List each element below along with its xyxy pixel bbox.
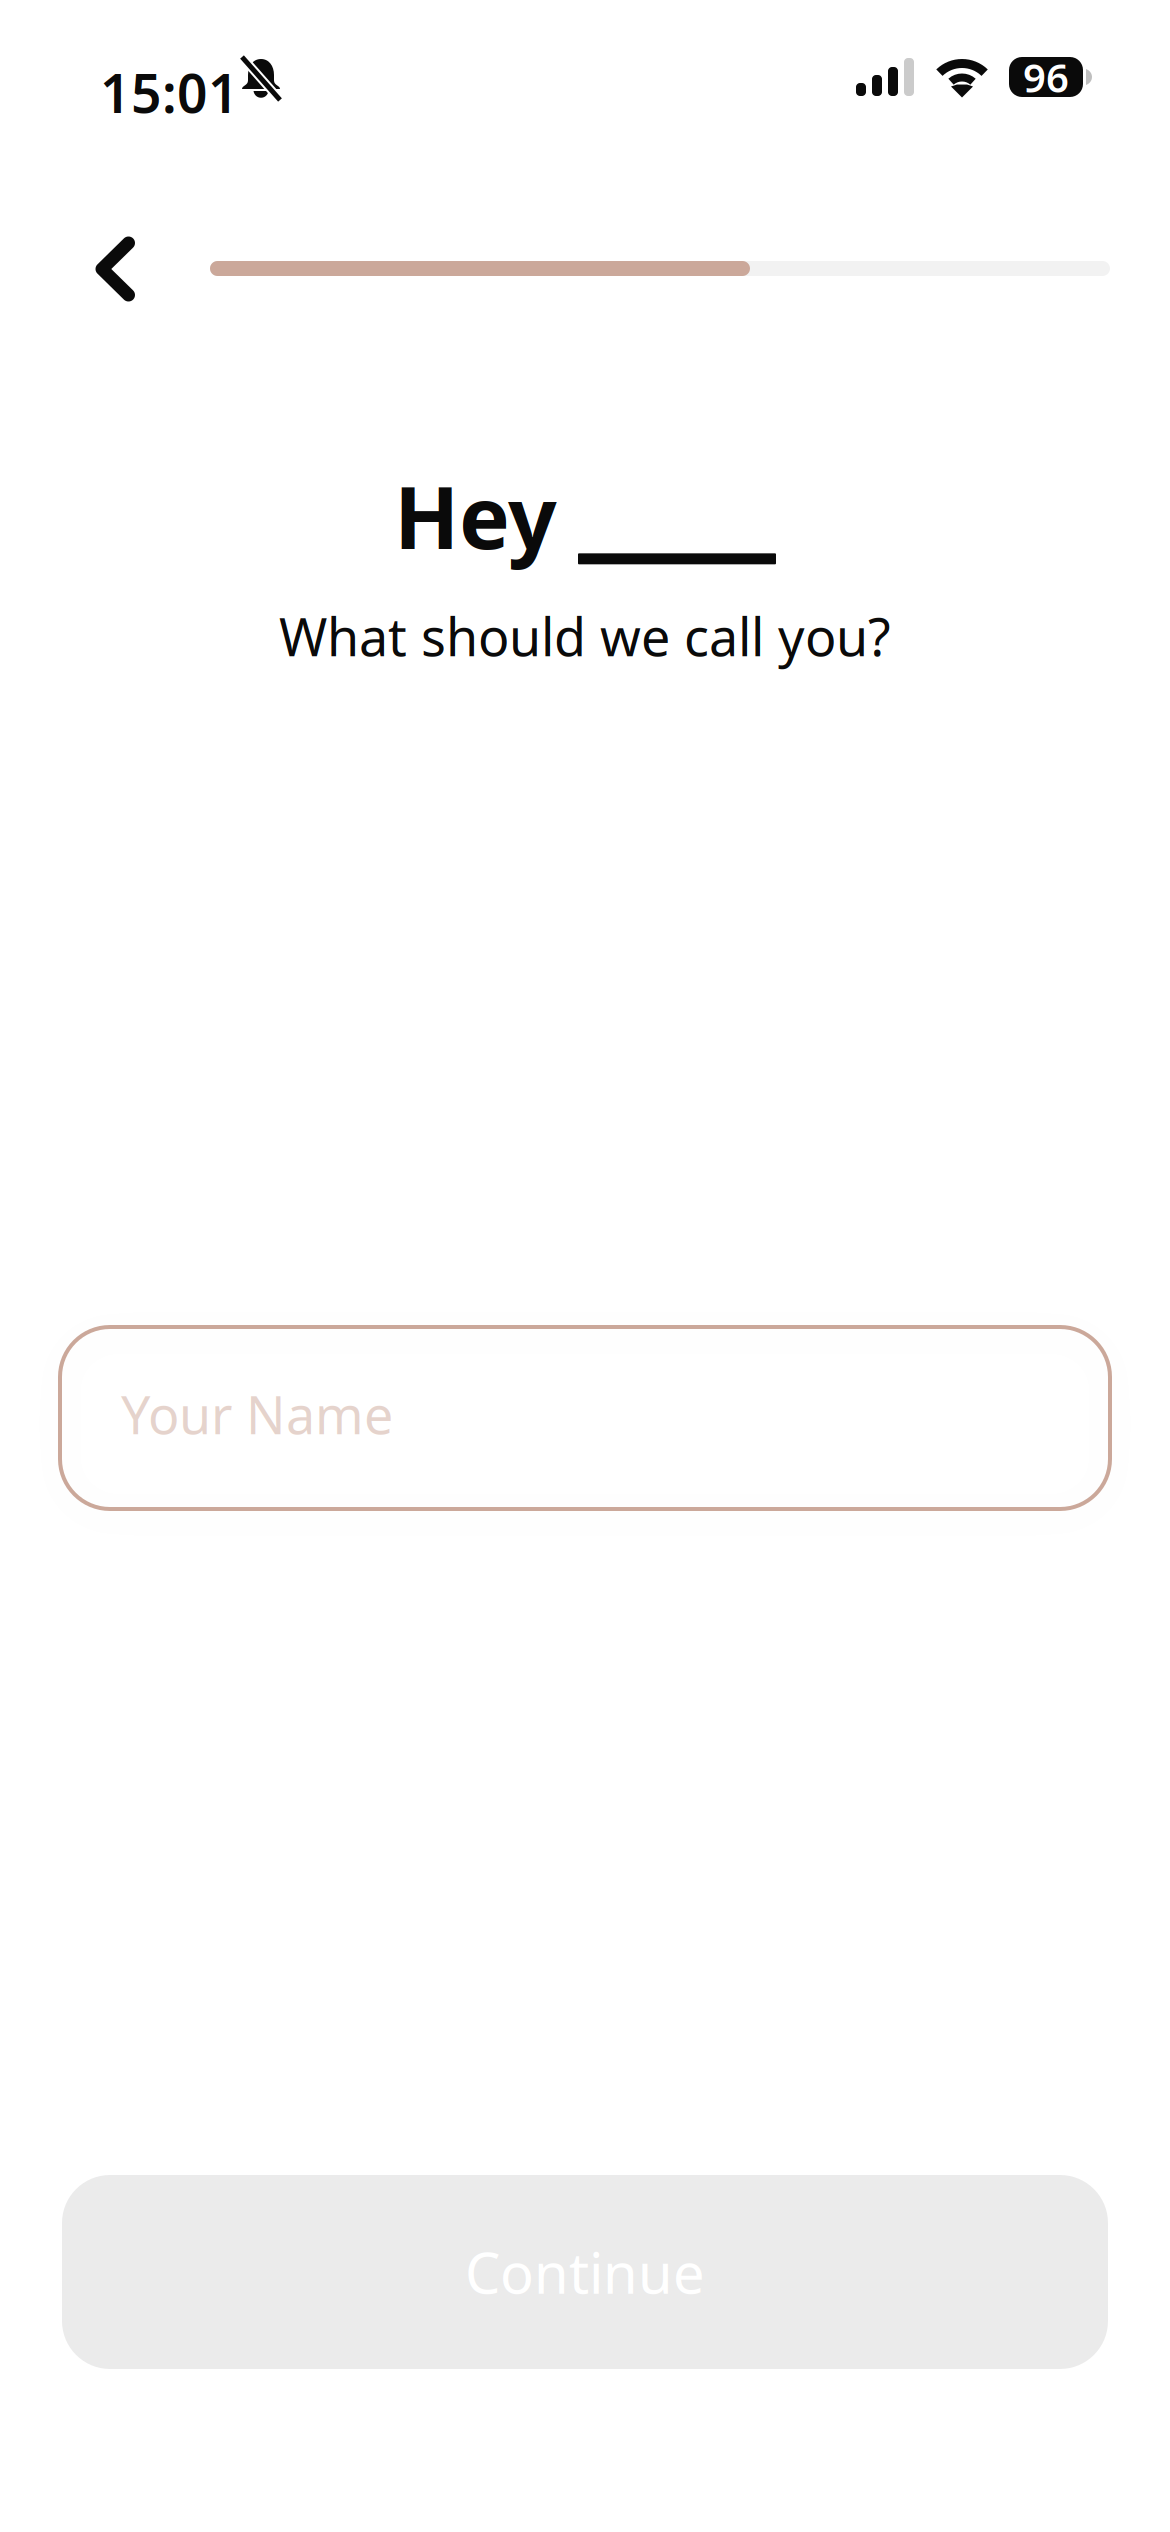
staticText: 15:01: [100, 57, 239, 128]
staticText: What should we call you?: [279, 601, 891, 671]
button[interactable]: Your Name: [60, 1327, 1110, 1509]
button[interactable]: Back: [70, 223, 162, 315]
staticText: Continue: [465, 2235, 705, 2309]
staticText: 96: [1023, 50, 1069, 103]
staticText: Hey: [394, 459, 557, 573]
staticText: Your Name: [121, 1379, 393, 1449]
